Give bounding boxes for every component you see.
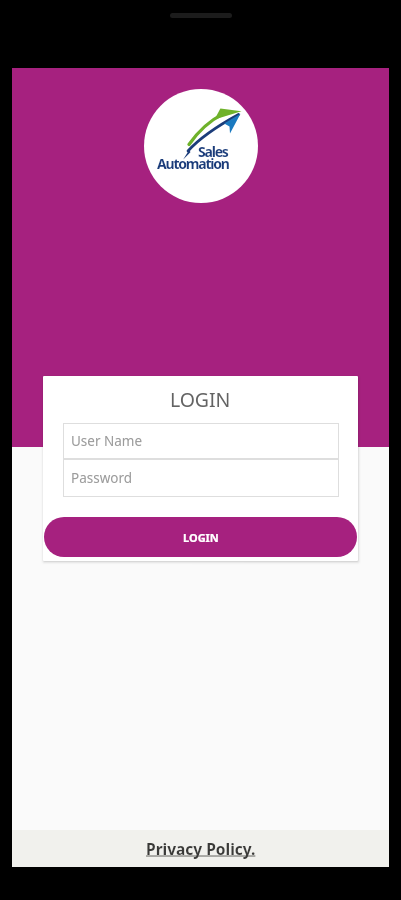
button[interactable]: LOGIN [44,517,357,557]
staticText: User Name [71,432,143,450]
button[interactable]: Password [63,459,339,497]
staticText: Password [71,469,133,487]
other: Sales Automation logo [144,89,258,203]
staticText: Automation [157,154,229,173]
staticText: Privacy Policy. [146,838,256,859]
staticText: LOGIN [183,530,219,545]
button[interactable]: User Name [63,423,339,459]
button[interactable]: Privacy Policy. [12,830,389,867]
staticText: Sales [198,142,228,161]
staticText: LOGIN [170,386,231,413]
